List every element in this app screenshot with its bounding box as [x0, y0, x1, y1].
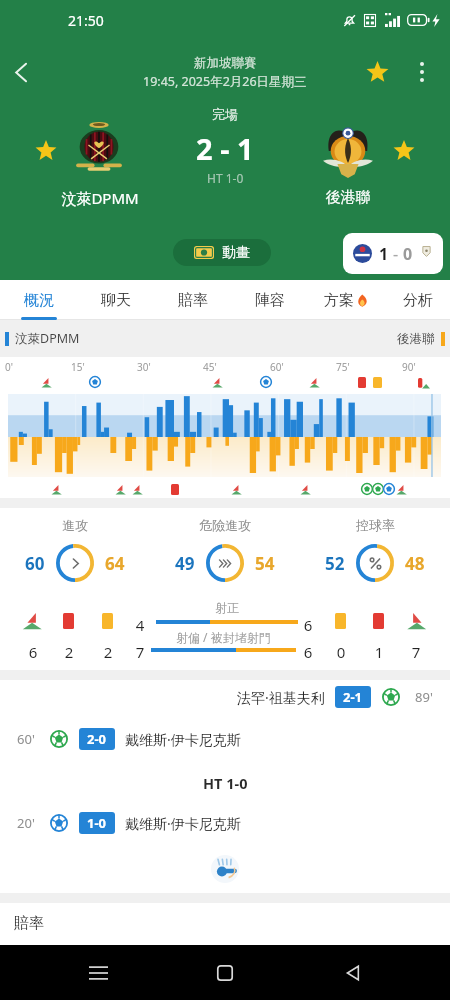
staticText: 21:50 — [68, 11, 104, 30]
staticText: 危險進攻 — [199, 517, 251, 533]
button[interactable]: 分析 — [385, 280, 450, 320]
staticText: 90' — [402, 360, 416, 374]
staticText: 動畫 — [222, 244, 250, 262]
staticText: 52 — [325, 552, 345, 575]
staticText: 60 — [25, 552, 45, 575]
staticText: HT 1-0 — [207, 170, 244, 186]
button[interactable]: Favourite — [355, 50, 399, 94]
staticText: 進攻 — [62, 517, 88, 533]
staticText: 新加坡聯賽 — [194, 55, 257, 71]
staticText: 54 — [255, 552, 275, 575]
staticText: 0 — [403, 243, 413, 265]
staticText: 45' — [203, 360, 217, 374]
staticText: 戴维斯·伊卡尼克斯 — [125, 814, 241, 833]
button[interactable]: Recent apps — [68, 945, 128, 1000]
staticText: 6 — [23, 642, 43, 662]
staticText: 6 — [298, 642, 318, 662]
button[interactable]: 賠率 — [154, 280, 231, 320]
staticText: 2 - 1 — [196, 129, 254, 168]
staticText: 48 — [405, 552, 425, 575]
staticText: 1 — [369, 642, 389, 662]
staticText: 2 — [59, 642, 79, 662]
staticText: 射偏 / 被封堵射門 — [176, 629, 271, 645]
staticText: 2-1 — [343, 688, 363, 706]
button[interactable]: More options — [403, 53, 441, 91]
staticText: 60' — [270, 360, 284, 374]
staticText: 0' — [5, 360, 13, 374]
staticText: 戴维斯·伊卡尼克斯 — [125, 730, 241, 749]
button[interactable]: 動畫 — [173, 239, 271, 266]
button[interactable]: Back — [323, 945, 383, 1000]
staticText: 64 — [105, 552, 125, 575]
staticText: 後港聯 — [268, 188, 428, 207]
staticText: HT 1-0 — [203, 773, 248, 793]
staticText: 射正 — [215, 600, 239, 615]
button[interactable]: 20' — [0, 810, 241, 836]
staticText: 89' — [412, 688, 436, 706]
staticText: 完場 — [212, 106, 238, 122]
staticText: 2-0 — [87, 730, 107, 748]
staticText: 陣容 — [255, 291, 285, 310]
staticText: 法罕·祖基夫利 — [237, 688, 325, 707]
staticText: 7 — [406, 642, 426, 662]
button[interactable]: 法罕·祖基夫利 — [237, 684, 450, 710]
staticText: 0 — [331, 642, 351, 662]
staticText: 2 — [98, 642, 118, 662]
staticText: 30' — [137, 360, 151, 374]
staticText: 聊天 — [101, 291, 131, 310]
staticText: 1 — [379, 243, 389, 265]
staticText: 60' — [14, 730, 38, 748]
staticText: 方案 — [324, 291, 354, 310]
button[interactable]: 60' — [0, 726, 241, 752]
staticText: 49 — [175, 552, 195, 575]
staticText: 1-0 — [87, 814, 107, 832]
button[interactable]: 賠率 — [0, 903, 450, 945]
staticText: 20' — [14, 814, 38, 832]
button[interactable]: 聊天 — [77, 280, 154, 320]
button[interactable]: 方案 — [308, 280, 385, 320]
staticText: 6 — [298, 615, 318, 635]
staticText: 賠率 — [178, 291, 208, 310]
staticText: 15' — [71, 360, 85, 374]
staticText: 分析 — [403, 291, 433, 310]
staticText: 19:45, 2025年2月26日星期三 — [143, 73, 307, 90]
button[interactable]: 陣容 — [231, 280, 308, 320]
staticText: 汶萊DPMM — [15, 330, 80, 347]
staticText: 75' — [336, 360, 350, 374]
staticText: 汶萊DPMM — [20, 188, 180, 208]
button[interactable]: 1 — [343, 233, 443, 274]
staticText: 賠率 — [14, 914, 44, 933]
button[interactable]: Back — [0, 50, 43, 94]
button[interactable]: 概況 — [0, 280, 77, 320]
staticText: 概況 — [24, 291, 54, 310]
staticText: 後港聯 — [397, 331, 435, 347]
staticText: 7 — [130, 642, 150, 662]
staticText: 控球率 — [356, 517, 395, 533]
staticText: - — [393, 243, 399, 265]
button[interactable]: Home — [195, 945, 255, 1000]
staticText: 4 — [130, 615, 150, 635]
